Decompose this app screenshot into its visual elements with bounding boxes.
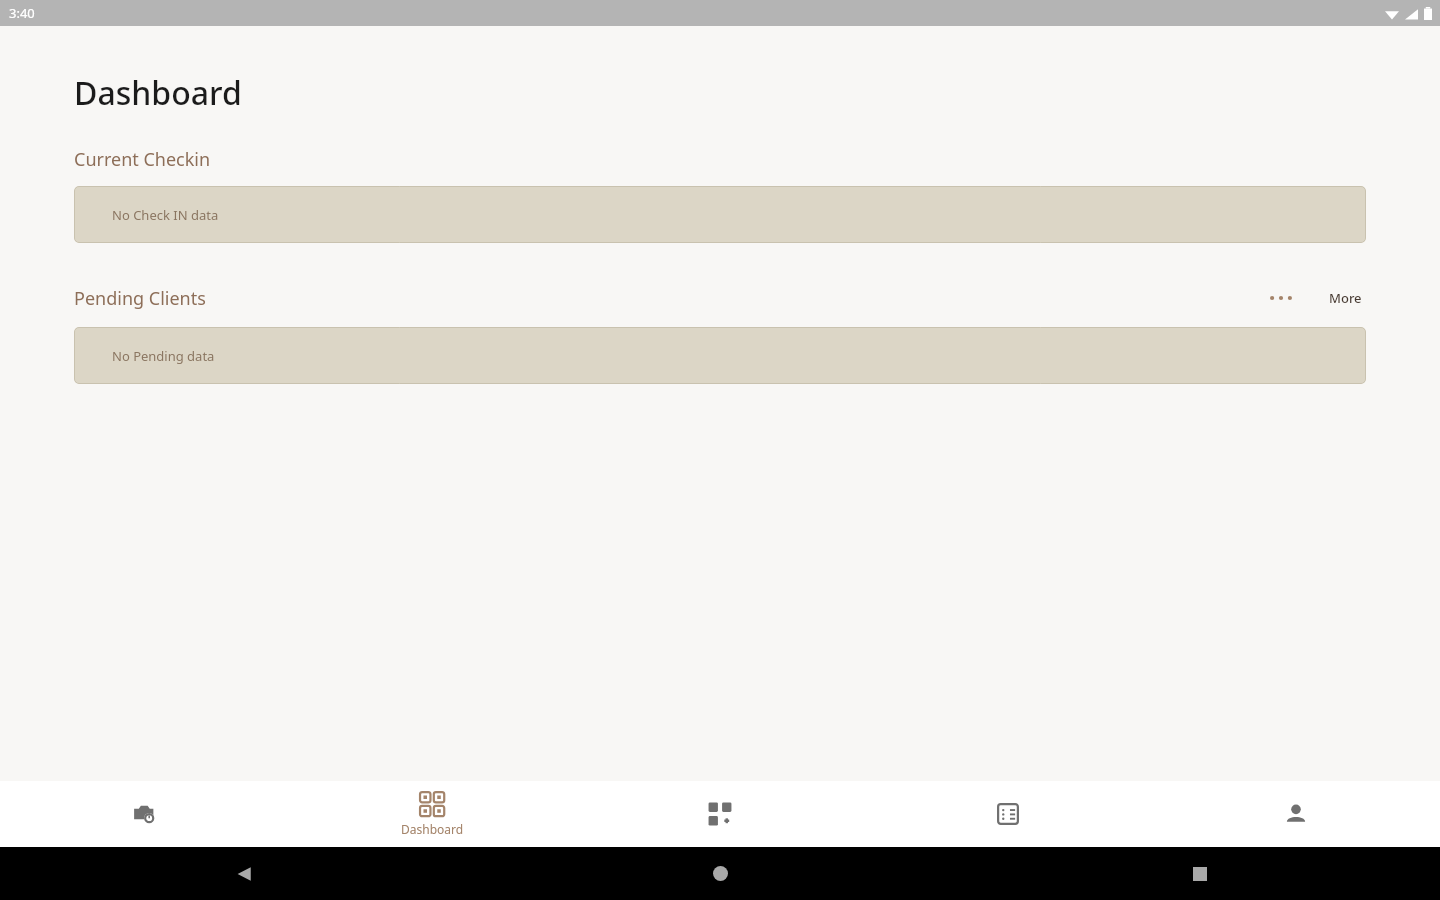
button[interactable]: Home (480, 847, 960, 900)
button[interactable]: More (1325, 285, 1366, 311)
button[interactable]: Recent apps (960, 847, 1440, 900)
button[interactable]: No Pending data (74, 327, 1366, 384)
button[interactable]: More options (1261, 283, 1301, 313)
button[interactable]: Profile (1152, 781, 1440, 847)
staticText: Dashboard (74, 71, 242, 115)
staticText: No Check IN data (112, 206, 219, 224)
staticText: Pending Clients (74, 286, 206, 311)
button[interactable]: Check in history (0, 781, 288, 847)
staticText: More (1329, 289, 1362, 307)
staticText: No Pending data (112, 347, 215, 365)
staticText: Dashboard (401, 821, 464, 837)
button[interactable]: Dashboard (288, 781, 576, 847)
staticText: Current Checkin (74, 147, 211, 172)
staticText: 3:40 (9, 4, 35, 22)
button[interactable]: Reports (864, 781, 1152, 847)
button[interactable]: Back (0, 847, 480, 900)
button[interactable]: No Check IN data (74, 186, 1366, 243)
button[interactable]: Widgets (576, 781, 864, 847)
